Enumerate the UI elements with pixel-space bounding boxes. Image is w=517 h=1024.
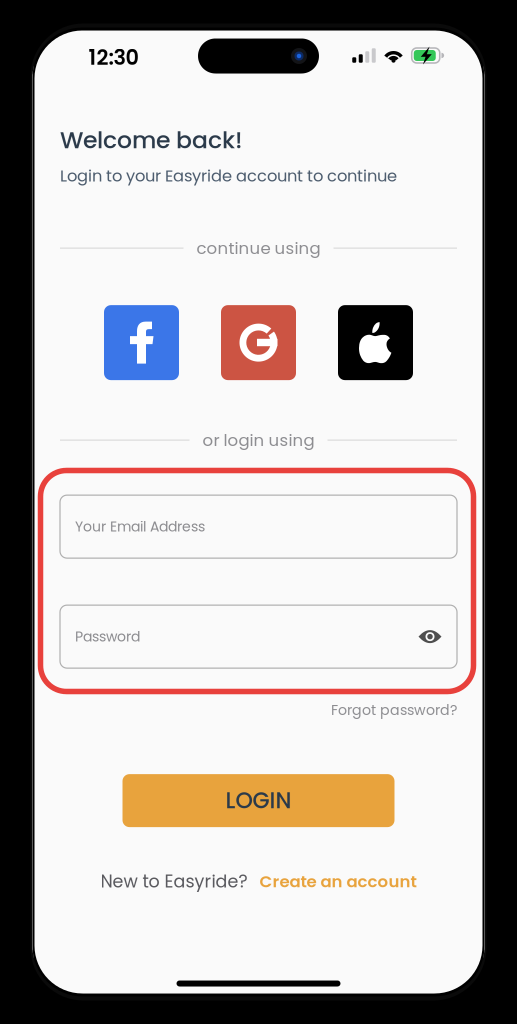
staticText: or login using (202, 429, 314, 452)
staticText: Your Email Address (75, 517, 205, 536)
staticText: LOGIN (225, 785, 291, 816)
button[interactable]: Forgot password? (60, 699, 457, 721)
staticText: Create an account (259, 870, 416, 893)
button[interactable]: Continue with Google (221, 305, 296, 380)
staticText: Password (75, 627, 140, 646)
staticText: Login to your Easyride account to contin… (60, 164, 397, 187)
button[interactable]: LOGIN (122, 774, 394, 827)
button[interactable]: Continue with Facebook (104, 305, 179, 380)
staticText: 12:30 (88, 43, 138, 72)
staticText: New to Easyride? (100, 869, 247, 894)
staticText: Welcome back! (60, 123, 243, 156)
button[interactable]: Password (60, 605, 457, 668)
staticText: Forgot password? (331, 700, 457, 720)
button[interactable]: Continue with Apple (338, 305, 413, 380)
button[interactable]: Create an account (259, 870, 416, 893)
staticText: continue using (196, 237, 320, 260)
button[interactable]: Your Email Address (60, 495, 457, 558)
